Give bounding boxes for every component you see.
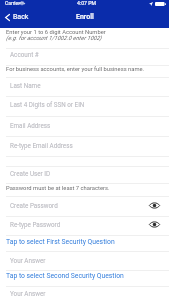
button[interactable]	[0, 48, 169, 65]
staticText: Last Name	[10, 82, 41, 89]
button[interactable]	[0, 216, 169, 235]
staticText: Re-type Password	[10, 221, 61, 228]
staticText: Tap to select First Security Question	[6, 238, 115, 246]
button[interactable]	[0, 196, 169, 216]
button[interactable]: Back	[3, 10, 31, 24]
staticText: 4:07 PM	[77, 0, 97, 6]
button[interactable]	[0, 116, 169, 136]
button[interactable]	[0, 286, 169, 300]
staticText: Your Answer	[10, 257, 46, 264]
staticText: Password must be at least 7 characters.	[6, 185, 110, 192]
staticText: Your Answer	[10, 290, 46, 297]
button[interactable]	[0, 136, 169, 156]
button[interactable]: Show password	[147, 217, 161, 231]
staticText: For business accounts, enter your full b…	[6, 66, 145, 73]
staticText: Enter your 1 to 6 digit Account Number	[6, 29, 106, 36]
staticText: Enroll	[76, 13, 94, 21]
staticText: Last 4 Digits of SSN or EIN	[10, 101, 85, 108]
staticText: Re-type Email Address	[10, 142, 73, 149]
staticText: Email Address	[10, 122, 51, 129]
button[interactable]	[0, 96, 169, 116]
staticText: Account #	[10, 51, 39, 58]
staticText: Create Password	[10, 202, 58, 209]
staticText: Create User ID	[10, 170, 51, 177]
button[interactable]	[0, 251, 169, 270]
staticText: (e.g. for account 1/1002.0 enter 1002)	[6, 35, 102, 42]
button[interactable]: Show password	[147, 198, 161, 212]
button[interactable]	[0, 270, 169, 286]
staticText: Carrier	[5, 0, 20, 6]
staticText: Tap to select Second Security Question	[6, 272, 124, 280]
button[interactable]	[0, 77, 169, 97]
staticText: Back	[13, 13, 29, 21]
button[interactable]	[0, 166, 169, 184]
button[interactable]	[0, 235, 169, 251]
